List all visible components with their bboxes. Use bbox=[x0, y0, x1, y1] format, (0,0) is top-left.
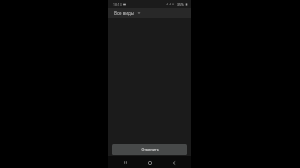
staticText: Отменить bbox=[141, 147, 159, 152]
button[interactable]: Home bbox=[144, 157, 155, 168]
button[interactable]: Recents bbox=[120, 157, 131, 168]
button[interactable]: Back bbox=[168, 157, 179, 168]
button[interactable]: Все виды bbox=[108, 8, 191, 18]
button[interactable]: Отменить bbox=[112, 144, 187, 155]
staticText: 18:13 bbox=[113, 2, 122, 7]
staticText: Все виды bbox=[114, 10, 135, 16]
staticText: 35% bbox=[177, 2, 184, 7]
